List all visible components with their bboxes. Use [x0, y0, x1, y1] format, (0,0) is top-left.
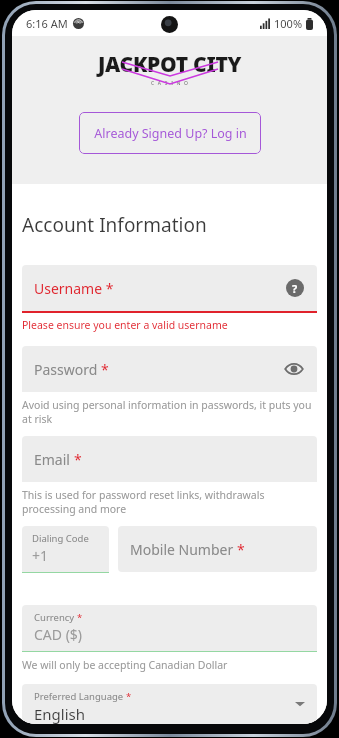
staticText: Account Information	[22, 212, 207, 238]
button[interactable]: Currency	[22, 605, 317, 651]
staticText: +1	[32, 546, 49, 565]
staticText: *	[126, 690, 132, 703]
staticText: Username *	[34, 279, 114, 298]
staticText: *	[237, 540, 245, 559]
staticText: CAD ($)	[34, 625, 83, 644]
staticText: We will only be accepting Canadian Dolla…	[22, 658, 228, 672]
staticText: 100%	[274, 16, 303, 31]
staticText: ?	[292, 281, 298, 296]
staticText: Email	[34, 450, 74, 469]
button[interactable]: Mobile Number	[118, 526, 317, 572]
button[interactable]: Dialing Code	[22, 526, 109, 572]
button[interactable]: Email	[22, 436, 317, 482]
staticText: *	[101, 360, 109, 379]
button[interactable]: Preferred Language	[22, 684, 317, 724]
staticText: Please ensure you enter a valid username	[22, 318, 228, 332]
button[interactable]: Password	[22, 346, 317, 392]
staticText: Preferred Language	[34, 690, 126, 703]
staticText: *	[74, 450, 82, 469]
staticText: Already Signed Up? Log in	[94, 125, 247, 142]
staticText: Avoid using personal information in pass…	[22, 398, 317, 426]
staticText: JACKPOT CITY	[98, 50, 242, 79]
staticText: *	[77, 611, 83, 624]
staticText: English	[34, 704, 86, 724]
button[interactable]: Username *	[22, 265, 317, 311]
button[interactable]: Show password	[283, 358, 305, 380]
staticText: Currency	[34, 611, 77, 624]
staticText: C A S I N O	[151, 80, 190, 87]
staticText: Mobile Number	[130, 540, 237, 559]
button[interactable]: Help	[285, 278, 305, 298]
staticText: 6:16 AM	[26, 16, 68, 31]
staticText: This is used for password reset links, w…	[22, 488, 317, 516]
button[interactable]: Already Signed Up? Log in	[79, 112, 261, 154]
staticText: Password	[34, 360, 101, 379]
staticText: Dialing Code	[32, 532, 89, 545]
